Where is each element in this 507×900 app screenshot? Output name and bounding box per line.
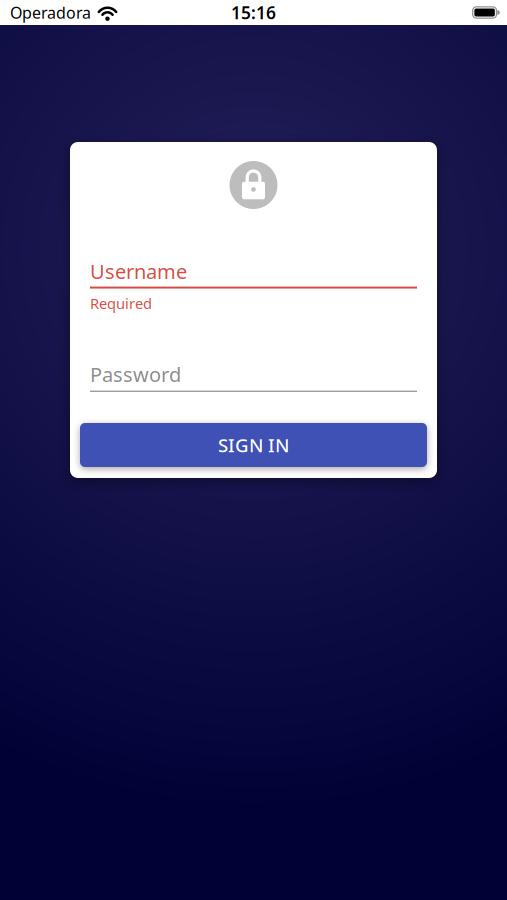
staticText: Required [90,294,152,313]
staticText: Operadora [10,2,91,23]
button[interactable]: Password [70,361,437,392]
staticText: SIGN IN [218,433,289,457]
button[interactable]: SIGN IN [80,423,427,467]
staticText: Password [90,361,181,388]
staticText: Username [90,258,187,285]
staticText: 15:16 [231,1,276,24]
button[interactable]: Username [70,258,437,289]
